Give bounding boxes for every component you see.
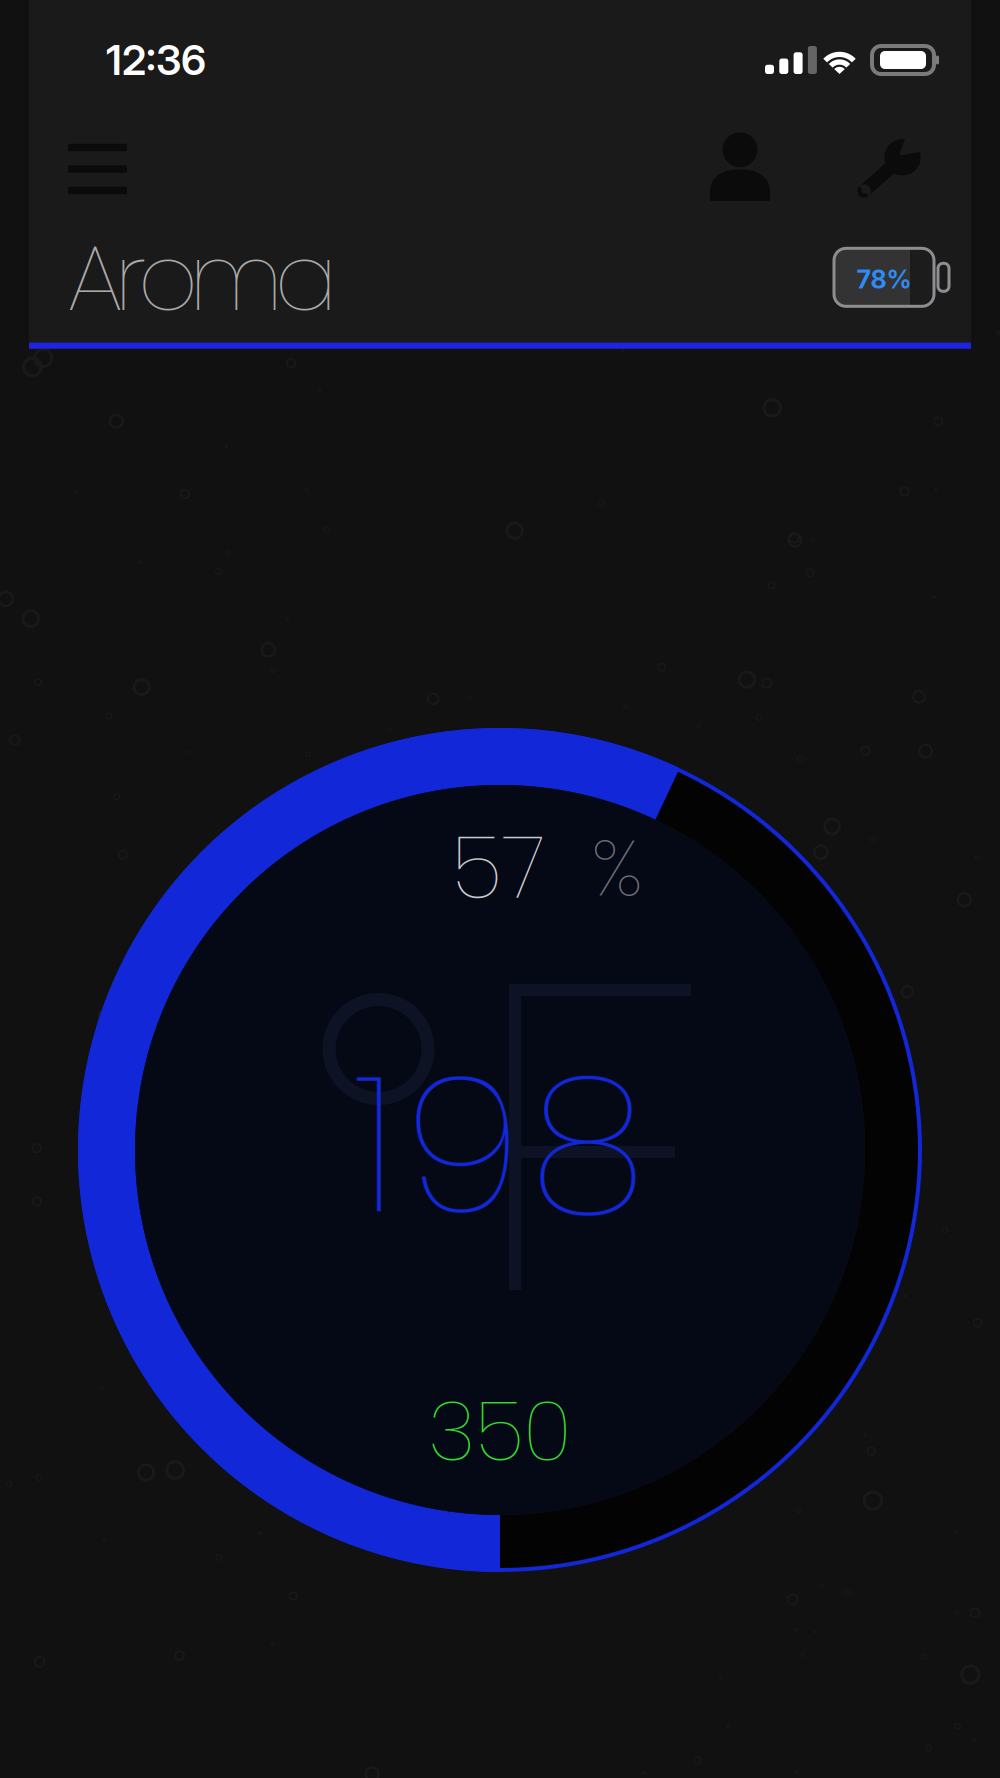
button[interactable]: Settings (847, 123, 931, 209)
staticText: 57 (451, 808, 545, 928)
staticText: 12:36 (106, 35, 206, 85)
staticText: 350 (428, 1373, 572, 1489)
staticText: Aroma (67, 212, 338, 343)
staticText: % (591, 813, 642, 923)
staticText: 78% (856, 264, 911, 295)
button[interactable]: Menu (56, 130, 139, 202)
button[interactable]: Account (702, 130, 786, 202)
staticText: 198 (354, 1010, 646, 1277)
